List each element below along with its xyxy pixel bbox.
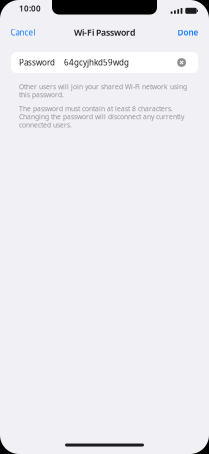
button[interactable]: Clear password	[177, 58, 186, 67]
staticText: The password must contain at least 8 cha…	[19, 104, 184, 129]
staticText: Password	[19, 57, 55, 68]
staticText: Wi-Fi Password	[74, 27, 135, 38]
button[interactable]: Cancel	[4, 22, 41, 43]
staticText: Done	[177, 27, 198, 38]
staticText: 64gcyjhkd59wdg	[64, 57, 129, 68]
button[interactable]: Done	[171, 22, 204, 43]
staticText: 10:00	[19, 3, 41, 14]
staticText: Cancel	[10, 27, 35, 38]
staticText: Other users will join your shared Wi-Fi …	[19, 82, 187, 99]
